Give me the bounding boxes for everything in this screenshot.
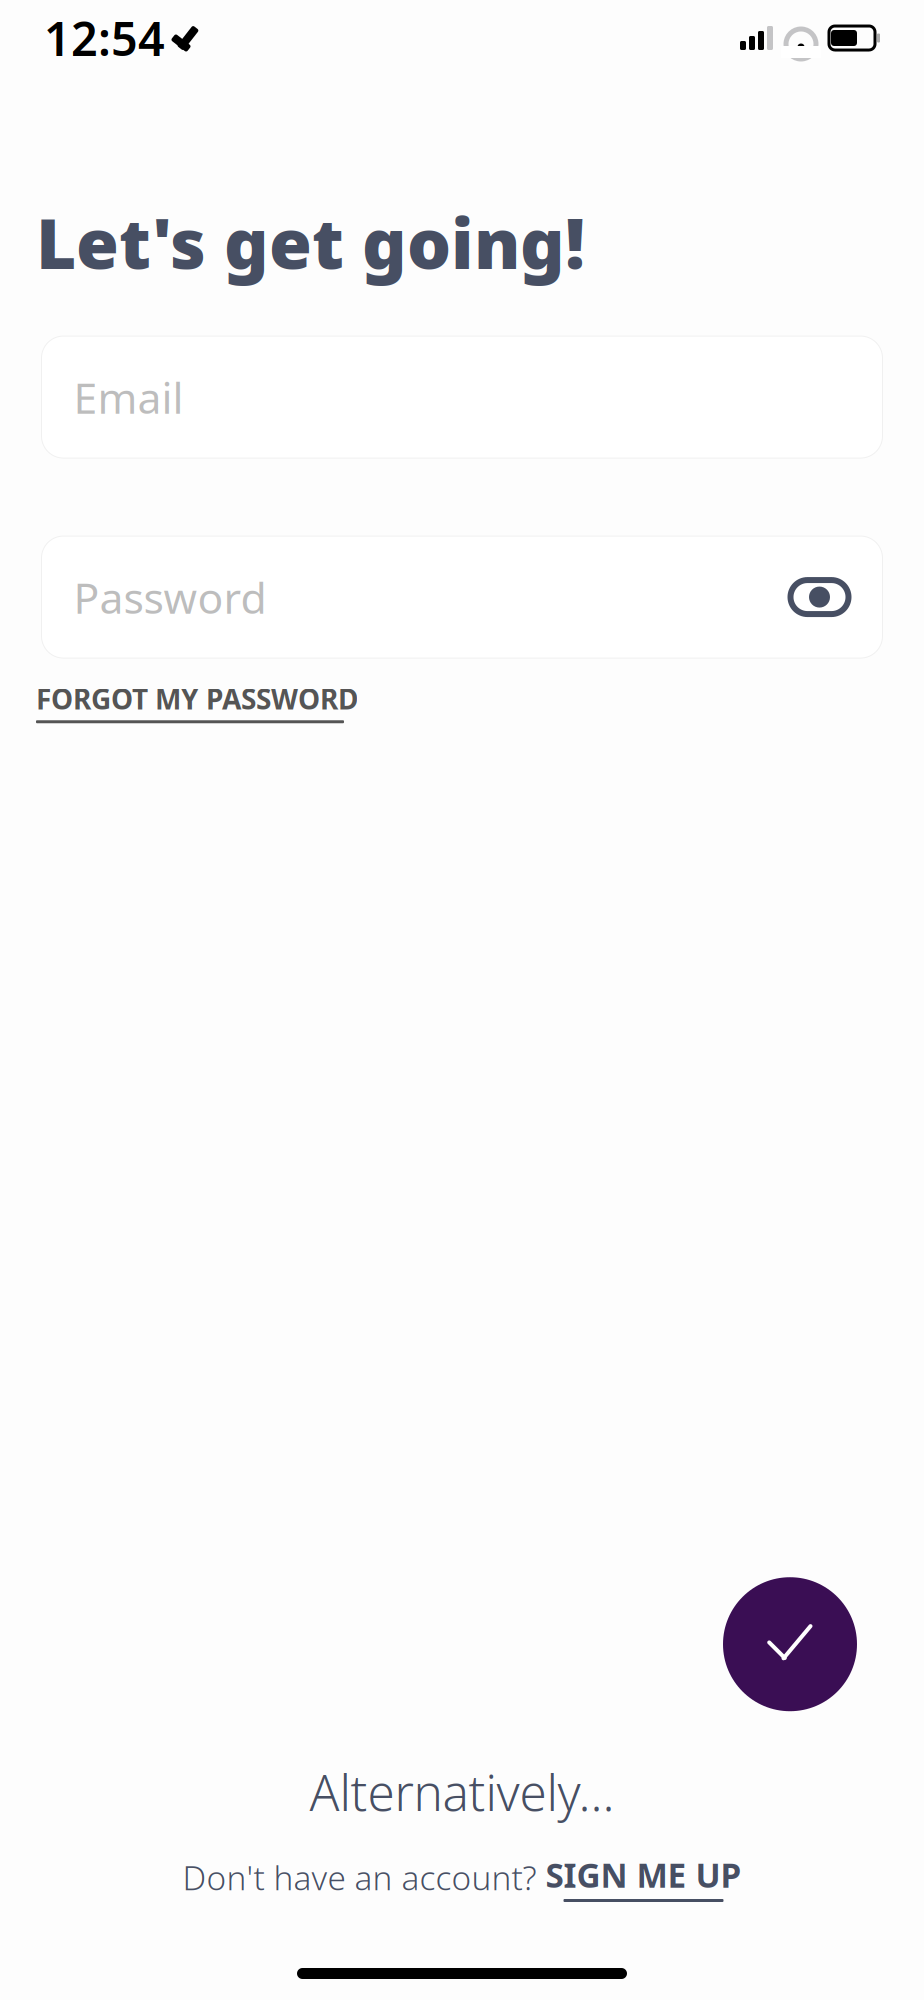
staticText: Don't have an account? (182, 1855, 545, 1899)
staticText: FORGOT MY PASSWORD (36, 680, 358, 717)
staticText: Password (73, 569, 266, 625)
staticText: Let's get going! (36, 196, 585, 288)
button[interactable]: Password (41, 536, 882, 658)
staticText: Alternatively... (309, 1759, 614, 1825)
staticText: SIGN ME UP (545, 1853, 741, 1897)
button[interactable]: Email (41, 336, 882, 458)
staticText: Email (73, 369, 183, 425)
button[interactable]: Continue (723, 1577, 857, 1711)
staticText: 12:54 (44, 7, 165, 69)
button[interactable]: SIGN ME UP (545, 1853, 741, 1902)
button[interactable]: FORGOT MY PASSWORD (36, 680, 358, 723)
